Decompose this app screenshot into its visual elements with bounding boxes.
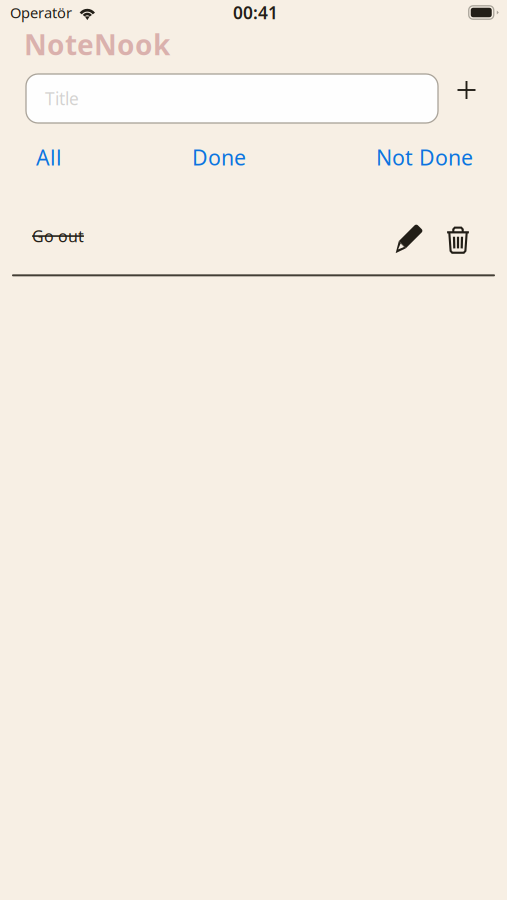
staticText: 00:41 <box>233 1 278 24</box>
button[interactable]: Edit <box>395 218 423 254</box>
staticText: Operatör <box>10 3 72 22</box>
button[interactable]: Done <box>192 143 246 171</box>
staticText: All <box>36 143 62 171</box>
button[interactable]: Add note <box>446 74 487 123</box>
staticText: Not Done <box>376 143 473 171</box>
staticText: Done <box>192 143 246 171</box>
button[interactable]: Delete <box>447 218 469 254</box>
button[interactable]: Not Done <box>376 143 473 171</box>
staticText: Go out <box>32 225 84 247</box>
staticText: Title <box>45 87 79 110</box>
staticText: NoteNook <box>24 26 170 63</box>
button[interactable]: All <box>36 143 62 171</box>
